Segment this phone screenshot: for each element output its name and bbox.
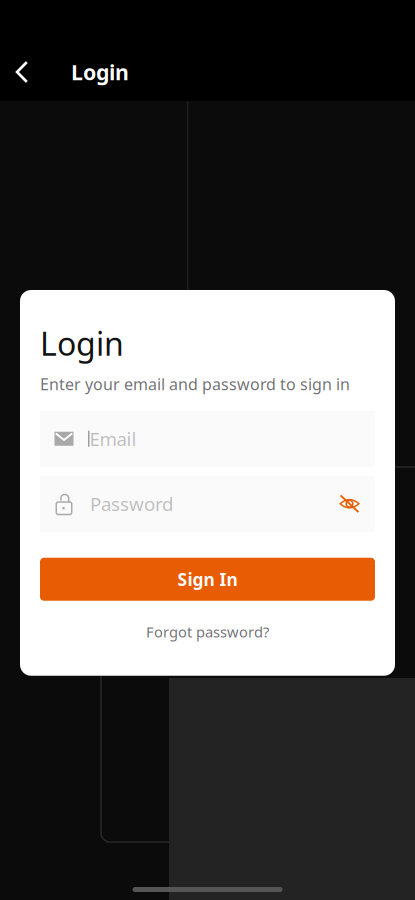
button[interactable]: Back bbox=[0, 50, 44, 94]
staticText: Login bbox=[40, 322, 124, 364]
button[interactable]: Sign In bbox=[40, 558, 375, 601]
staticText: Password bbox=[90, 491, 173, 516]
staticText: Enter your email and password to sign in bbox=[40, 373, 350, 395]
staticText: Forgot password? bbox=[146, 622, 269, 641]
button[interactable]: Forgot password? bbox=[40, 621, 375, 643]
button[interactable]: Show password bbox=[339, 484, 375, 524]
staticText: Login bbox=[71, 58, 129, 86]
staticText: Sign In bbox=[177, 568, 237, 591]
staticText: Email bbox=[89, 426, 136, 451]
